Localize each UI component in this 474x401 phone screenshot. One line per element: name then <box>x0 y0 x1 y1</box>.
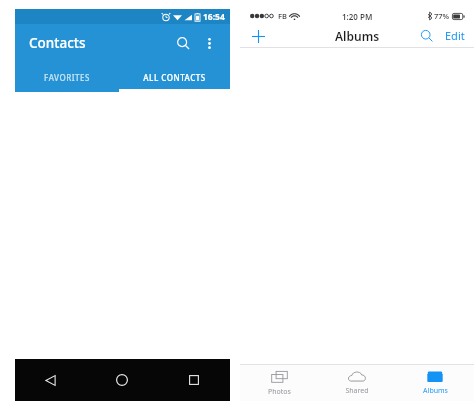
staticText: FB <box>278 11 287 21</box>
staticText: Edit <box>445 28 465 43</box>
button[interactable]: ALL CONTACTS <box>119 62 230 92</box>
button[interactable]: FAVORITES <box>15 62 119 92</box>
staticText: FAVORITES <box>44 72 90 83</box>
staticText: 1:20 PM <box>342 11 373 22</box>
staticText: ALL CONTACTS <box>143 72 206 83</box>
button[interactable]: More options <box>198 32 220 54</box>
button[interactable]: Shared <box>318 365 396 401</box>
staticText: 77% <box>434 11 450 21</box>
button[interactable]: Edit <box>443 25 467 46</box>
button[interactable]: Albums <box>396 365 474 401</box>
button[interactable]: Search <box>417 26 437 46</box>
button[interactable]: Add album <box>247 25 269 47</box>
staticText: Shared <box>345 386 369 396</box>
staticText: Albums <box>335 28 380 44</box>
staticText: 16:54 <box>203 11 225 23</box>
button[interactable]: Photos <box>240 365 318 401</box>
staticText: Albums <box>423 386 448 396</box>
button[interactable]: Home <box>86 359 158 401</box>
staticText: Contacts <box>29 34 170 52</box>
button[interactable]: Search <box>170 30 196 56</box>
staticText: Photos <box>268 387 291 397</box>
button[interactable]: Back <box>15 359 86 401</box>
button[interactable]: Recent apps <box>158 359 230 401</box>
